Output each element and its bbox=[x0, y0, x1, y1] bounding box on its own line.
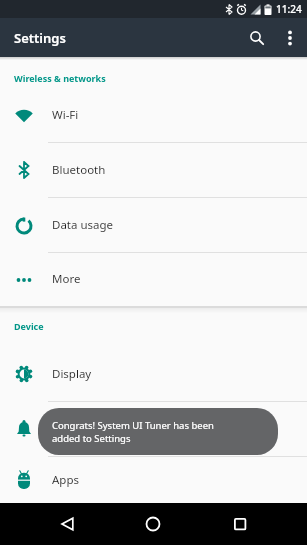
staticText: 11:24 bbox=[276, 2, 302, 16]
staticText: added to Settings bbox=[52, 432, 131, 445]
staticText: Data usage bbox=[52, 217, 114, 233]
button[interactable]: Apps bbox=[0, 457, 307, 503]
button[interactable] bbox=[278, 18, 302, 57]
staticText: Wi-Fi bbox=[52, 107, 79, 123]
staticText: More bbox=[52, 271, 81, 287]
staticText: Wireless & networks bbox=[14, 72, 106, 84]
button[interactable] bbox=[0, 402, 307, 456]
staticText: Congrats! System UI Tuner has been bbox=[52, 419, 214, 432]
button[interactable]: Data usage bbox=[0, 198, 307, 252]
staticText: Settings bbox=[14, 29, 66, 47]
staticText: Device bbox=[14, 320, 44, 332]
staticText: Display bbox=[52, 366, 92, 382]
button[interactable]: Congrats! System UI Tuner has been bbox=[38, 408, 278, 455]
button[interactable] bbox=[53, 503, 81, 545]
button[interactable]: Bluetooth bbox=[0, 143, 307, 197]
button[interactable] bbox=[243, 18, 271, 57]
staticText: Bluetooth bbox=[52, 162, 106, 178]
button[interactable] bbox=[139, 503, 167, 545]
button[interactable]: More bbox=[0, 253, 307, 305]
button[interactable] bbox=[226, 503, 254, 545]
button[interactable]: Wi-Fi bbox=[0, 88, 307, 142]
button[interactable]: Display bbox=[0, 347, 307, 401]
staticText: Apps bbox=[52, 472, 80, 488]
